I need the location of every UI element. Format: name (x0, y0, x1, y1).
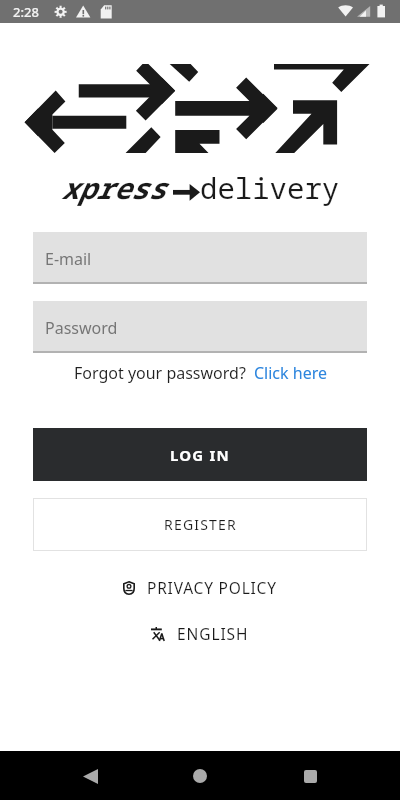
staticText: Password (45, 317, 118, 339)
button[interactable]: Recent apps (290, 756, 330, 796)
button[interactable]: ENGLISH (0, 623, 400, 644)
staticText: 2:28 (13, 3, 39, 21)
button[interactable]: Back (70, 756, 110, 796)
staticText: xpress (61, 168, 166, 207)
staticText: delivery (200, 168, 340, 207)
button[interactable]: E-mail (33, 232, 367, 282)
staticText: PRIVACY POLICY (147, 577, 277, 598)
staticText: REGISTER (164, 515, 237, 534)
button[interactable]: Home (180, 756, 220, 796)
button[interactable]: LOG IN (33, 428, 367, 481)
staticText: LOG IN (170, 445, 230, 465)
staticText: Forgot your password? (74, 362, 246, 384)
button[interactable]: REGISTER (33, 498, 367, 551)
button[interactable]: PRIVACY POLICY (0, 577, 400, 598)
button[interactable]: Click here (254, 362, 327, 384)
staticText: E-mail (45, 248, 92, 270)
staticText: ENGLISH (177, 623, 249, 644)
button[interactable]: Password (33, 301, 367, 351)
